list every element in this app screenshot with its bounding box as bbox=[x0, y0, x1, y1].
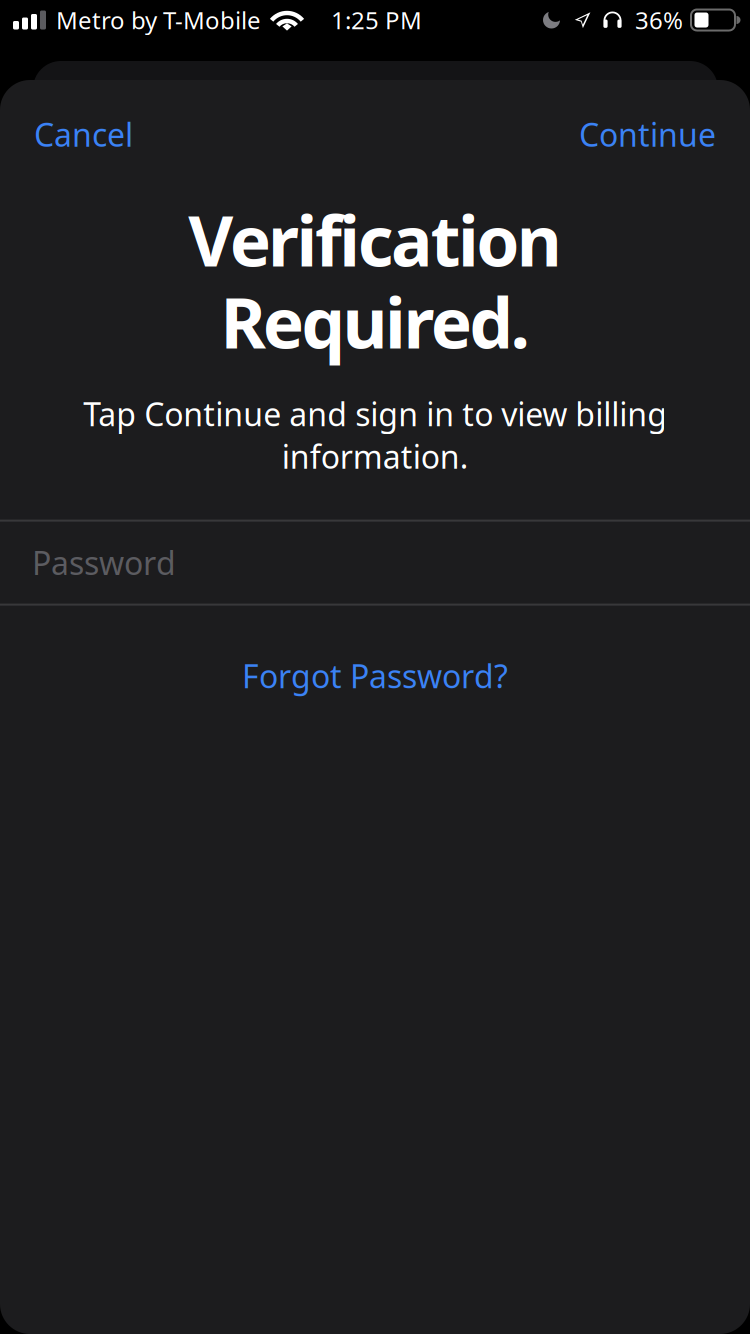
staticText: Metro by T-Mobile bbox=[56, 4, 261, 36]
button[interactable]: Cancel bbox=[17, 101, 150, 167]
staticText: Password bbox=[32, 541, 176, 584]
staticText: Continue bbox=[579, 113, 716, 155]
staticText: 36% bbox=[635, 4, 683, 36]
button[interactable]: Forgot Password? bbox=[218, 645, 532, 707]
button[interactable]: Continue bbox=[562, 101, 733, 167]
staticText: Required. bbox=[220, 276, 530, 368]
staticText: Forgot Password? bbox=[242, 655, 508, 697]
staticText: Tap Continue and sign in to view billing… bbox=[83, 393, 667, 478]
staticText: Cancel bbox=[34, 113, 133, 155]
staticText: 1:25 PM bbox=[331, 4, 422, 36]
staticText: Verification bbox=[188, 193, 562, 286]
